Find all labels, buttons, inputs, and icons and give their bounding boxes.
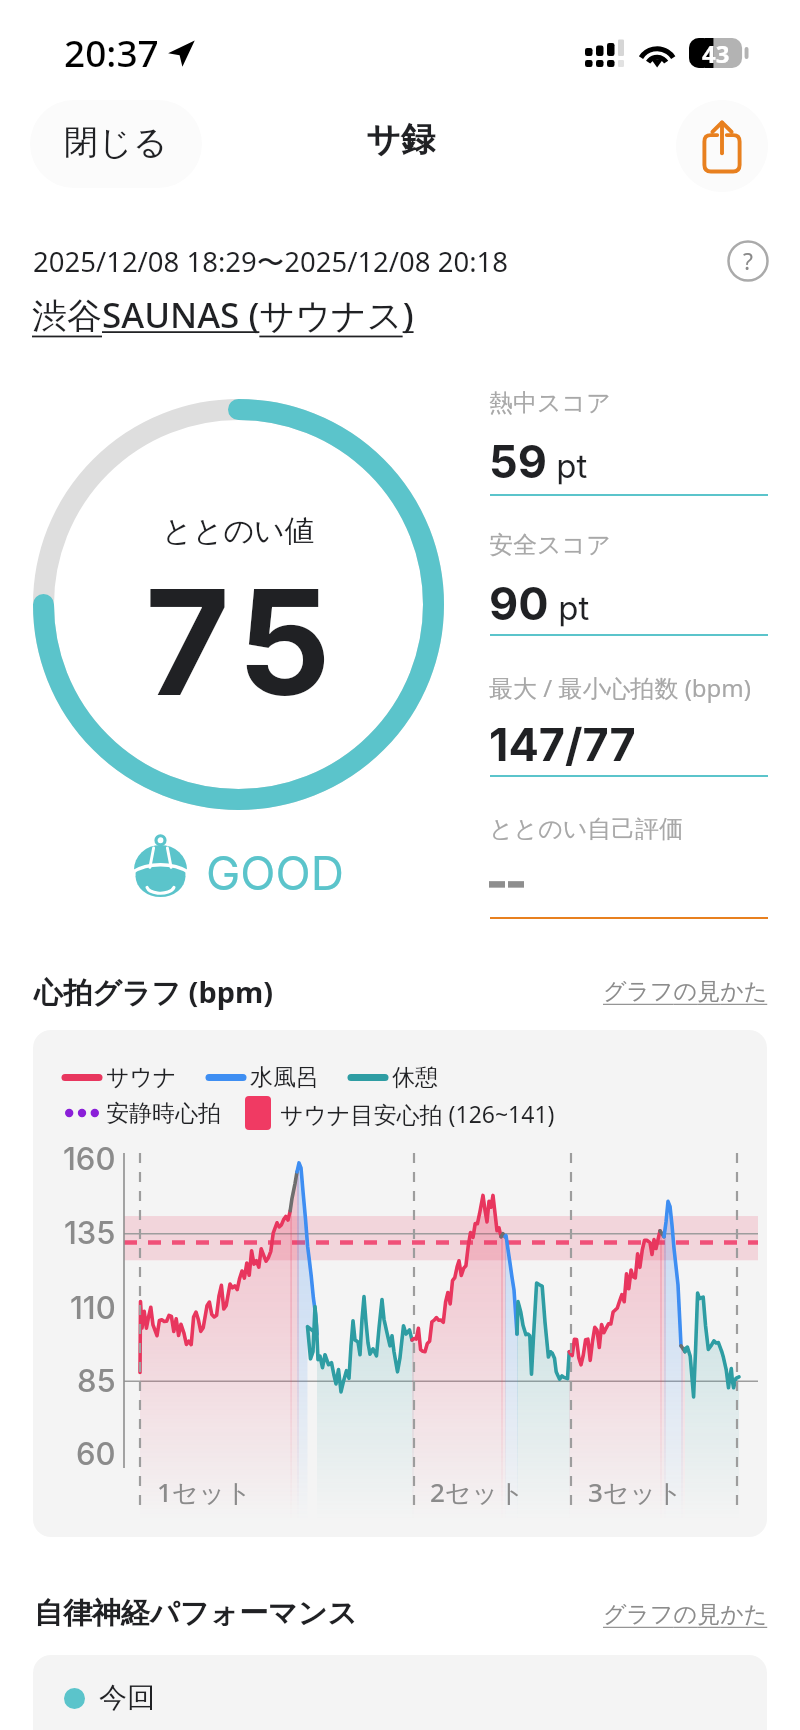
staticText: 心拍グラフ (bpm) <box>34 972 274 1012</box>
button[interactable]: Share <box>676 100 768 192</box>
staticText: グラフの見かた <box>603 977 768 1006</box>
button[interactable]: グラフの見かた <box>603 977 768 1006</box>
staticText: pt <box>547 446 588 486</box>
staticText: 水風呂 <box>250 1063 319 1092</box>
staticText: ととのい自己評価 <box>489 814 684 844</box>
staticText: 160 <box>63 1140 116 1178</box>
staticText: 熱中スコア <box>489 388 611 418</box>
staticText: 休憩 <box>392 1063 438 1092</box>
staticText: pt <box>549 588 590 628</box>
staticText: 60 <box>76 1435 116 1473</box>
button[interactable]: グラフの見かた <box>603 1600 768 1629</box>
staticText: 43 <box>702 37 730 67</box>
staticText: ? <box>743 245 753 276</box>
staticText: 2セット <box>430 1474 525 1510</box>
staticText: 閉じる <box>64 121 168 164</box>
staticText: 最大 / 最小心拍数 (bpm) <box>489 671 752 704</box>
staticText: 自律神経パフォーマンス <box>34 1595 358 1632</box>
staticText: 85 <box>77 1362 116 1400</box>
staticText: 3セット <box>588 1474 683 1510</box>
staticText: 75 <box>145 554 340 731</box>
staticText: サウナ <box>106 1063 177 1092</box>
button[interactable]: Help <box>727 240 769 282</box>
staticText: 1セット <box>157 1474 252 1510</box>
staticText: 147/77 <box>489 717 636 771</box>
staticText: 安静時心拍 <box>106 1099 221 1128</box>
staticText: 110 <box>70 1289 116 1327</box>
button[interactable]: 閉じる <box>30 100 202 188</box>
staticText: ととのい値 <box>162 512 315 550</box>
staticText: グラフの見かた <box>603 1600 768 1629</box>
staticText: 安全スコア <box>489 530 611 560</box>
staticText: サウナ目安心拍 (126~141) <box>280 1098 555 1129</box>
staticText: GOOD <box>206 845 344 901</box>
staticText: 今回 <box>99 1680 155 1715</box>
staticText: サ録 <box>366 118 435 161</box>
staticText: 20:37 <box>64 27 159 77</box>
staticText: 2025/12/08 18:29〜2025/12/08 20:18 <box>33 243 508 281</box>
button[interactable]: 渋谷SAUNAS (サウナス) <box>32 291 414 339</box>
staticText: 59 <box>489 434 547 488</box>
staticText: 135 <box>64 1214 116 1252</box>
staticText: 90 <box>489 576 549 630</box>
